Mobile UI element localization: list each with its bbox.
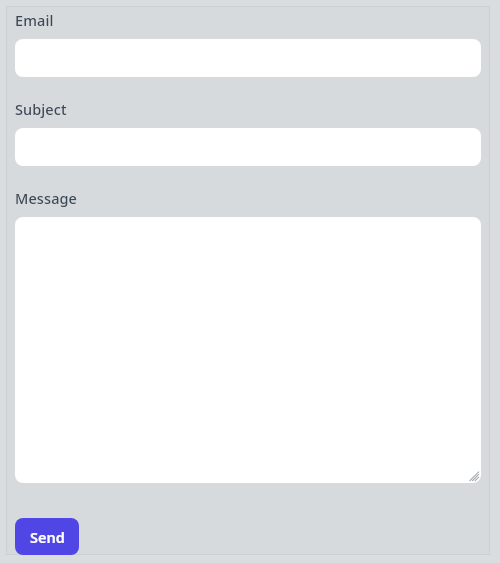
staticText: Send <box>30 527 65 547</box>
staticText: Message <box>15 188 78 208</box>
button[interactable]: Send <box>15 518 79 555</box>
staticText: Email <box>15 10 54 30</box>
staticText: Subject <box>15 99 67 119</box>
